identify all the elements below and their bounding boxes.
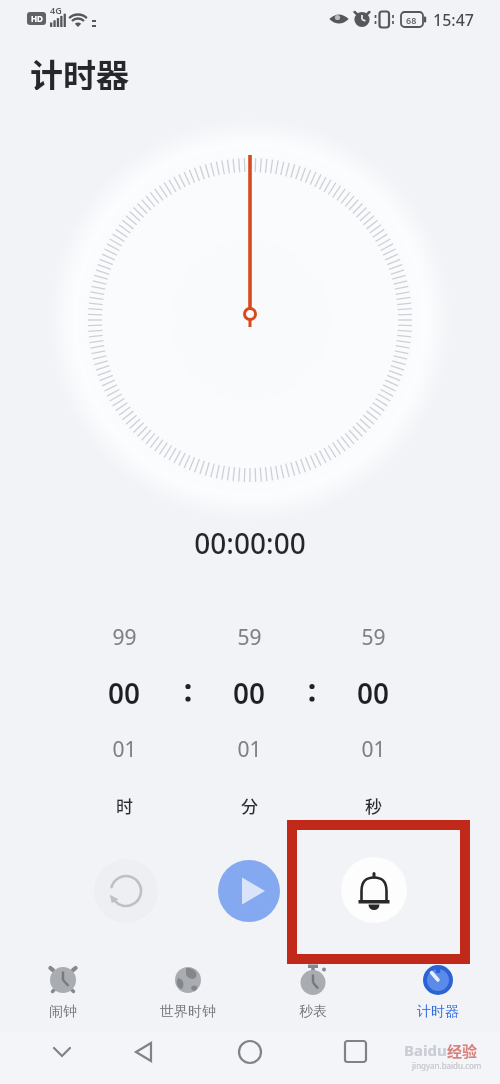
staticText: 99 — [112, 623, 137, 652]
staticText: 59 — [237, 623, 262, 652]
button[interactable]: 计时器 — [375, 952, 500, 1032]
staticText: 00 — [357, 674, 390, 712]
staticText: 00 — [233, 674, 266, 712]
staticText: 闹钟 — [49, 1003, 77, 1021]
staticText: 经验 — [447, 1040, 478, 1062]
staticText: 00 — [108, 674, 141, 712]
button[interactable] — [218, 860, 280, 922]
staticText: 15:47 — [433, 9, 474, 29]
staticText: 59 — [361, 623, 386, 652]
button[interactable] — [341, 857, 407, 923]
staticText: 计时器 — [30, 50, 129, 90]
staticText: 计时器 — [417, 1003, 459, 1021]
button[interactable] — [94, 859, 158, 923]
staticText: 世界时钟 — [160, 1003, 216, 1021]
staticText: 秒表 — [299, 1003, 327, 1021]
button[interactable]: 闹钟 — [0, 952, 125, 1032]
staticText: 秒 — [365, 793, 382, 818]
staticText: 分 — [241, 793, 258, 818]
button[interactable]: 00 — [79, 673, 169, 713]
button[interactable]: 00 — [328, 673, 418, 713]
staticText: 01 — [112, 735, 137, 764]
button[interactable]: 00 — [204, 673, 294, 713]
button[interactable]: 秒表 — [250, 952, 375, 1032]
button[interactable]: 世界时钟 — [125, 952, 250, 1032]
staticText: 时 — [116, 793, 133, 818]
staticText: 01 — [361, 735, 386, 764]
staticText: HD — [31, 13, 43, 24]
staticText: 00:00:00 — [194, 524, 306, 562]
staticText: 01 — [237, 735, 262, 764]
staticText: jingyan.baidu.com — [412, 1060, 482, 1071]
staticText: Baidu — [404, 1040, 447, 1060]
staticText: 4G — [50, 4, 62, 16]
staticText: 68 — [406, 14, 417, 26]
